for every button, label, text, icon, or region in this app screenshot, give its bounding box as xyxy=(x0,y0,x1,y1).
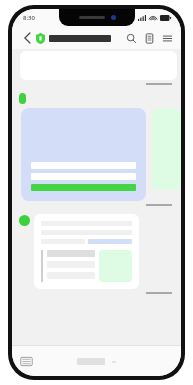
button[interactable] xyxy=(21,108,146,201)
button[interactable]: Back xyxy=(20,31,34,45)
staticText: 8:30 xyxy=(23,14,35,22)
button[interactable]: Keyboard xyxy=(20,355,33,368)
button[interactable]: Menu xyxy=(162,33,173,44)
button[interactable]: Search xyxy=(126,33,137,44)
button[interactable] xyxy=(31,184,136,191)
button[interactable]: Documents xyxy=(144,33,155,44)
button[interactable] xyxy=(34,214,139,289)
